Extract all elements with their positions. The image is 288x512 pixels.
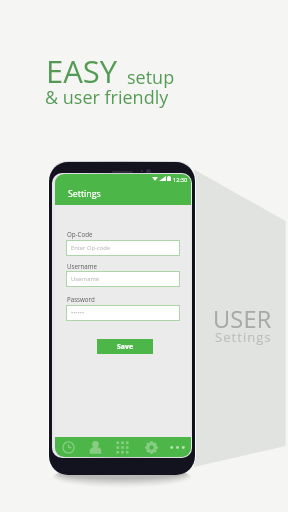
staticText: Username bbox=[71, 275, 100, 283]
staticText: Settings bbox=[215, 328, 272, 346]
button[interactable]: Apps bbox=[110, 437, 137, 457]
staticText: Save bbox=[117, 342, 133, 351]
staticText: •••••• bbox=[71, 309, 85, 317]
staticText: USER bbox=[213, 303, 272, 335]
button[interactable]: Settings bbox=[137, 437, 164, 457]
button[interactable]: More bbox=[164, 437, 191, 457]
staticText: Settings bbox=[68, 188, 101, 200]
staticText: Op-Code bbox=[67, 230, 93, 238]
button[interactable]: Profile bbox=[83, 437, 110, 457]
staticText: Password bbox=[67, 295, 95, 303]
staticText: setup bbox=[127, 65, 175, 90]
staticText: & user friendly bbox=[45, 85, 169, 110]
button[interactable]: Save bbox=[97, 339, 153, 354]
staticText: Enter Op-code bbox=[71, 244, 110, 252]
staticText: 12:30 bbox=[173, 176, 188, 184]
button[interactable]: Recent bbox=[55, 437, 83, 457]
staticText: EASY bbox=[46, 50, 118, 92]
staticText: Username bbox=[67, 262, 97, 270]
